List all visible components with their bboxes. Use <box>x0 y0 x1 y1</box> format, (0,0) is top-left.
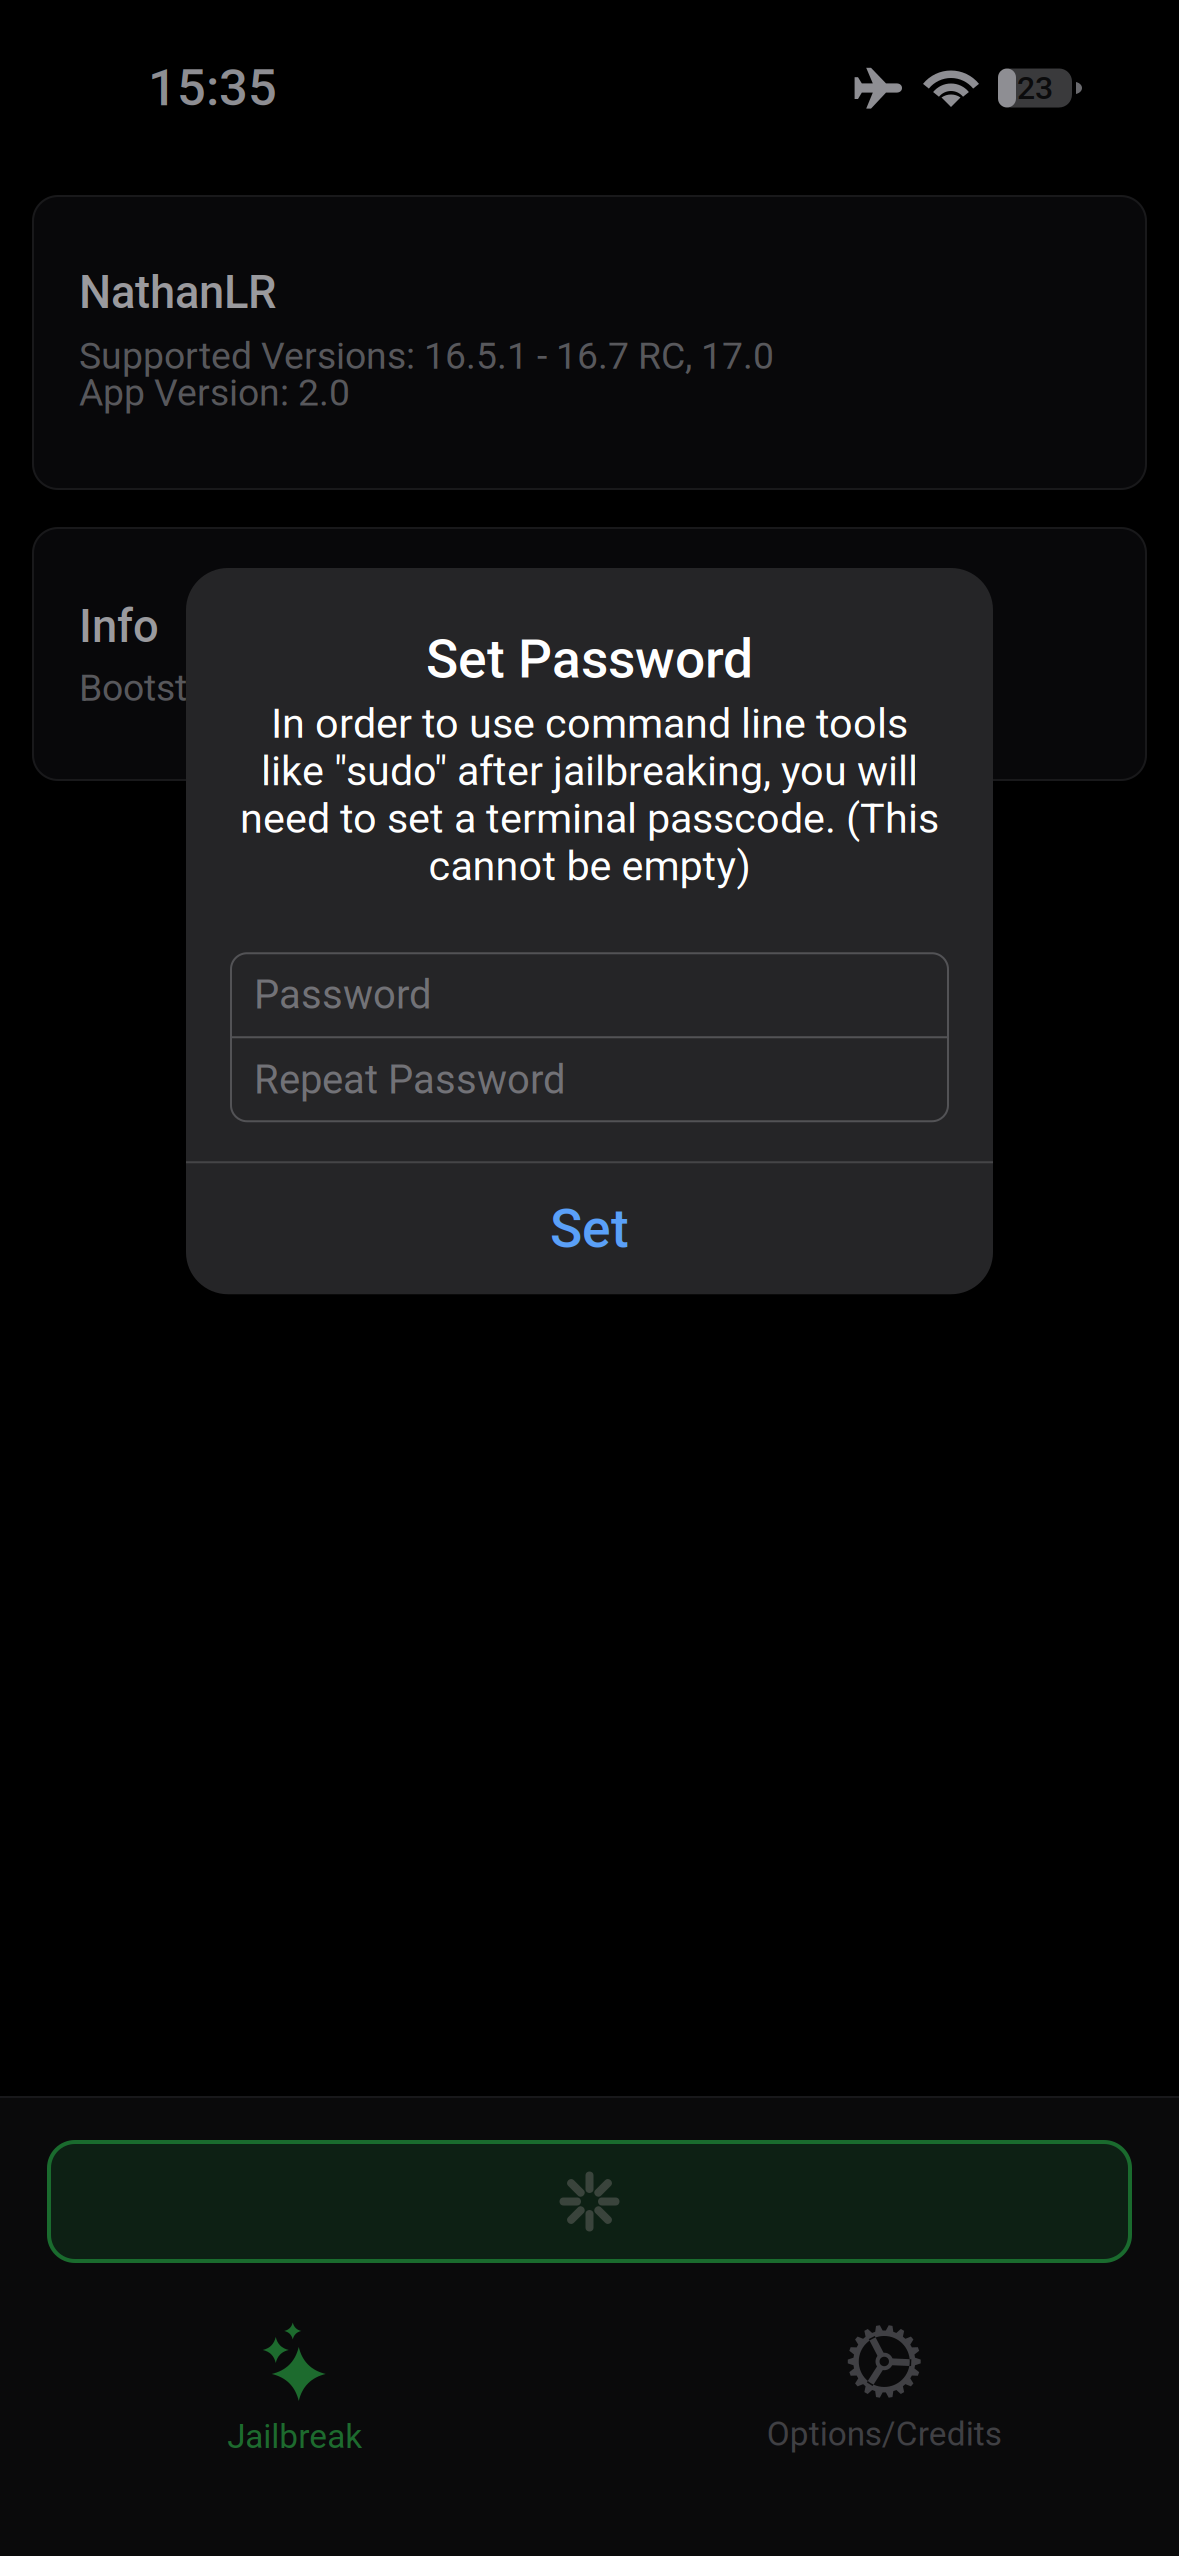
staticText: 15:35 <box>148 58 277 118</box>
staticText: Set Password <box>426 628 753 690</box>
button[interactable]: Jailbreak <box>0 2309 589 2469</box>
staticText: need to set a terminal passcode. (This <box>240 794 939 843</box>
button[interactable]: Jailbreak in progress <box>0 2142 1179 2261</box>
staticText: Options/Credits <box>767 2414 1002 2454</box>
staticText: Set <box>550 1197 629 1260</box>
staticText: Repeat Password <box>254 1056 566 1103</box>
staticText: cannot be empty) <box>428 842 750 890</box>
staticText: Bootstrap: Not installed <box>79 666 467 710</box>
staticText: 23 <box>1017 69 1053 107</box>
staticText: Password <box>254 971 432 1018</box>
staticText: like "sudo" after jailbreaking, you will <box>261 747 918 795</box>
staticText: Info <box>79 600 159 653</box>
button[interactable]: Options/Credits <box>589 2309 1179 2469</box>
staticText: App Version: 2.0 <box>79 371 350 415</box>
staticText: In order to use command line tools <box>271 699 908 748</box>
staticText: NathanLR <box>79 266 277 319</box>
button[interactable]: Set <box>186 1163 993 1294</box>
staticText: Jailbreak <box>227 2417 362 2456</box>
staticText: Supported Versions: 16.5.1 - 16.7 RC, 17… <box>79 334 774 378</box>
